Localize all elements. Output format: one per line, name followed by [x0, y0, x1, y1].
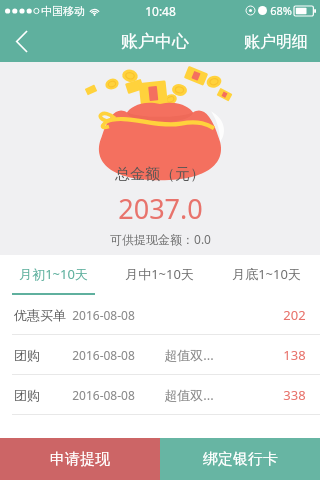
- staticText: 可供提现金额：0.0: [110, 231, 211, 247]
- button[interactable]: 申请提现: [0, 438, 160, 480]
- staticText: 优惠买单: [14, 307, 66, 323]
- staticText: 2016-08-08: [72, 347, 135, 363]
- button[interactable]: 绑定银行卡: [160, 438, 320, 480]
- staticText: 账户明细: [244, 32, 308, 52]
- staticText: 总金额（元）: [115, 165, 205, 184]
- button[interactable]: 团购: [0, 335, 320, 374]
- staticText: 月底1~10天: [232, 265, 301, 283]
- staticText: 338: [283, 386, 306, 404]
- button[interactable]: 月中1~10天: [106, 255, 213, 293]
- button[interactable]: 月底1~10天: [213, 255, 320, 293]
- staticText: 10:48: [145, 3, 176, 19]
- staticText: 团购: [14, 387, 40, 403]
- button[interactable]: 账户明细: [232, 21, 320, 62]
- staticText: 2016-08-08: [72, 387, 135, 403]
- button[interactable]: 月初1~10天: [0, 255, 106, 293]
- staticText: 绑定银行卡: [203, 450, 278, 469]
- staticText: 中国移动: [41, 4, 85, 18]
- staticText: 超值双...: [164, 386, 214, 404]
- staticText: 2016-08-08: [72, 307, 135, 323]
- staticText: 月初1~10天: [19, 265, 88, 283]
- staticText: 月中1~10天: [125, 265, 194, 283]
- button[interactable]: Back: [0, 21, 44, 62]
- staticText: 申请提现: [50, 450, 110, 469]
- staticText: 202: [283, 306, 306, 324]
- staticText: 2037.0: [118, 190, 203, 227]
- staticText: 138: [283, 346, 306, 364]
- staticText: 68%: [270, 3, 292, 18]
- button[interactable]: 优惠买单: [0, 295, 320, 334]
- button[interactable]: 团购: [0, 375, 320, 414]
- staticText: 账户中心: [121, 31, 189, 52]
- staticText: 超值双...: [164, 346, 214, 364]
- staticText: 团购: [14, 347, 40, 363]
